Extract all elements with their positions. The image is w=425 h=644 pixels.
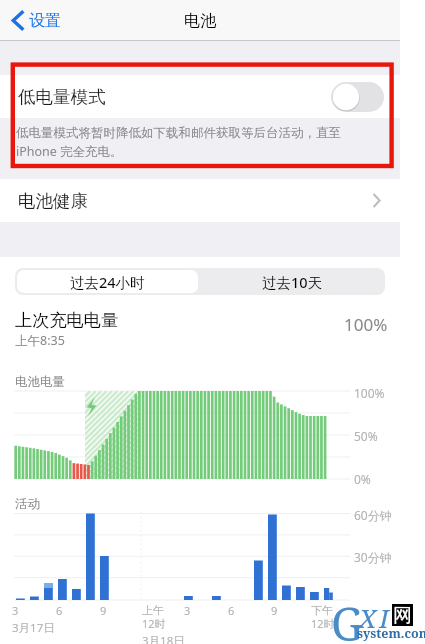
staticText: 9 [271, 603, 278, 618]
staticText: 0% [354, 471, 371, 487]
staticText: 电池电量 [15, 374, 65, 390]
staticText: 60分钟 [354, 507, 392, 523]
staticText: 设置 [29, 11, 61, 31]
button[interactable]: 过去10天 [200, 268, 385, 295]
staticText: G [331, 593, 364, 644]
button[interactable]: 电池健康 [0, 179, 400, 222]
staticText: 下午 [311, 603, 333, 617]
staticText: 100% [354, 385, 385, 401]
button[interactable]: 低电量模式 [0, 75, 400, 118]
staticText: 6 [228, 603, 235, 618]
staticText: 3 [184, 603, 191, 618]
staticText: 30分钟 [354, 549, 392, 565]
button[interactable]: 低电量模式开关 [331, 82, 384, 112]
staticText: 上午 [142, 603, 164, 617]
staticText: 上次充电电量 [15, 309, 119, 331]
staticText: XI [359, 600, 392, 635]
staticText: 网 [393, 604, 412, 626]
staticText: 电池健康 [18, 190, 88, 212]
staticText: system.com [357, 625, 425, 642]
staticText: 3月17日 [12, 620, 55, 636]
staticText: 9 [100, 603, 107, 618]
staticText: 低电量模式 [18, 86, 106, 108]
staticText: 电池 [184, 11, 216, 31]
staticText: 上午8:35 [15, 332, 65, 349]
button[interactable]: 设置 [11, 10, 67, 31]
staticText: 活动 [15, 496, 40, 512]
button[interactable]: 过去24小时 [17, 270, 198, 293]
staticText: 50% [354, 428, 378, 444]
staticText: 3 [12, 603, 19, 618]
staticText: 12时 [311, 616, 335, 631]
staticText: 6 [56, 603, 63, 618]
staticText: 12时 [142, 616, 166, 631]
staticText: 3月18日 [142, 633, 185, 644]
staticText: 低电量模式将暂时降低如下载和邮件获取等后台活动，直至 iPhone 完全充电。 [16, 124, 384, 160]
staticText: 100% [344, 313, 388, 336]
staticText: 过去10天 [262, 272, 323, 292]
staticText: 过去24小时 [70, 272, 145, 292]
